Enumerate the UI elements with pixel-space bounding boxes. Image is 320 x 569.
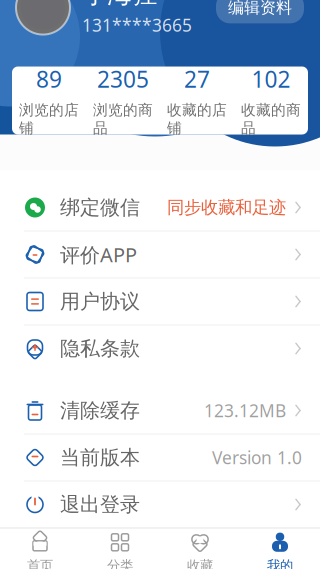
button[interactable]: 退出登录 [0,481,320,527]
staticText: 首页 [27,557,53,569]
button[interactable]: 27 [160,66,234,134]
staticText: 评价APP [60,241,137,268]
button[interactable]: 102 [234,66,308,134]
button[interactable]: 用户协议 [0,278,320,324]
staticText: 同步收藏和足迹 [167,197,286,218]
button[interactable]: 分类 [80,528,160,569]
staticText: 102 [251,64,290,94]
staticText: 收藏 [187,557,213,569]
staticText: 用户协议 [60,289,140,314]
staticText: 隐私条款 [60,336,140,361]
button[interactable]: 当前版本 [0,434,320,480]
staticText: 27 [184,64,210,94]
button[interactable]: 清除缓存 [0,387,320,433]
button[interactable]: 隐私条款 [0,325,320,371]
staticText: 绑定微信 [60,195,140,220]
button[interactable]: 评价APP [0,231,320,277]
button[interactable]: 2305 [86,66,160,134]
staticText: Version 1.0 [212,446,302,469]
button[interactable]: 收藏 [160,528,240,569]
staticText: 浏览的店铺 [19,101,79,137]
staticText: 退出登录 [60,492,140,517]
staticText: 123.12MB [204,399,286,422]
staticText: 2305 [97,64,149,94]
staticText: 89 [36,64,62,94]
button[interactable]: 绑定微信 [0,184,320,230]
staticText: 131****3665 [82,14,192,37]
button[interactable]: Profile photo [16,0,70,35]
button[interactable]: 89 [12,66,86,134]
staticText: 清除缓存 [60,398,140,423]
staticText: 小海狸 [82,0,157,10]
button[interactable]: 编辑资料 [216,0,304,23]
staticText: 我的 [267,557,293,569]
button[interactable]: 首页 [0,528,80,569]
staticText: 浏览的商品 [93,101,153,137]
staticText: 编辑资料 [228,0,292,17]
staticText: 分类 [107,557,133,569]
staticText: 收藏的商品 [241,101,301,137]
staticText: 当前版本 [60,445,140,470]
staticText: 收藏的店铺 [167,101,227,137]
button[interactable]: 我的 [240,528,320,569]
